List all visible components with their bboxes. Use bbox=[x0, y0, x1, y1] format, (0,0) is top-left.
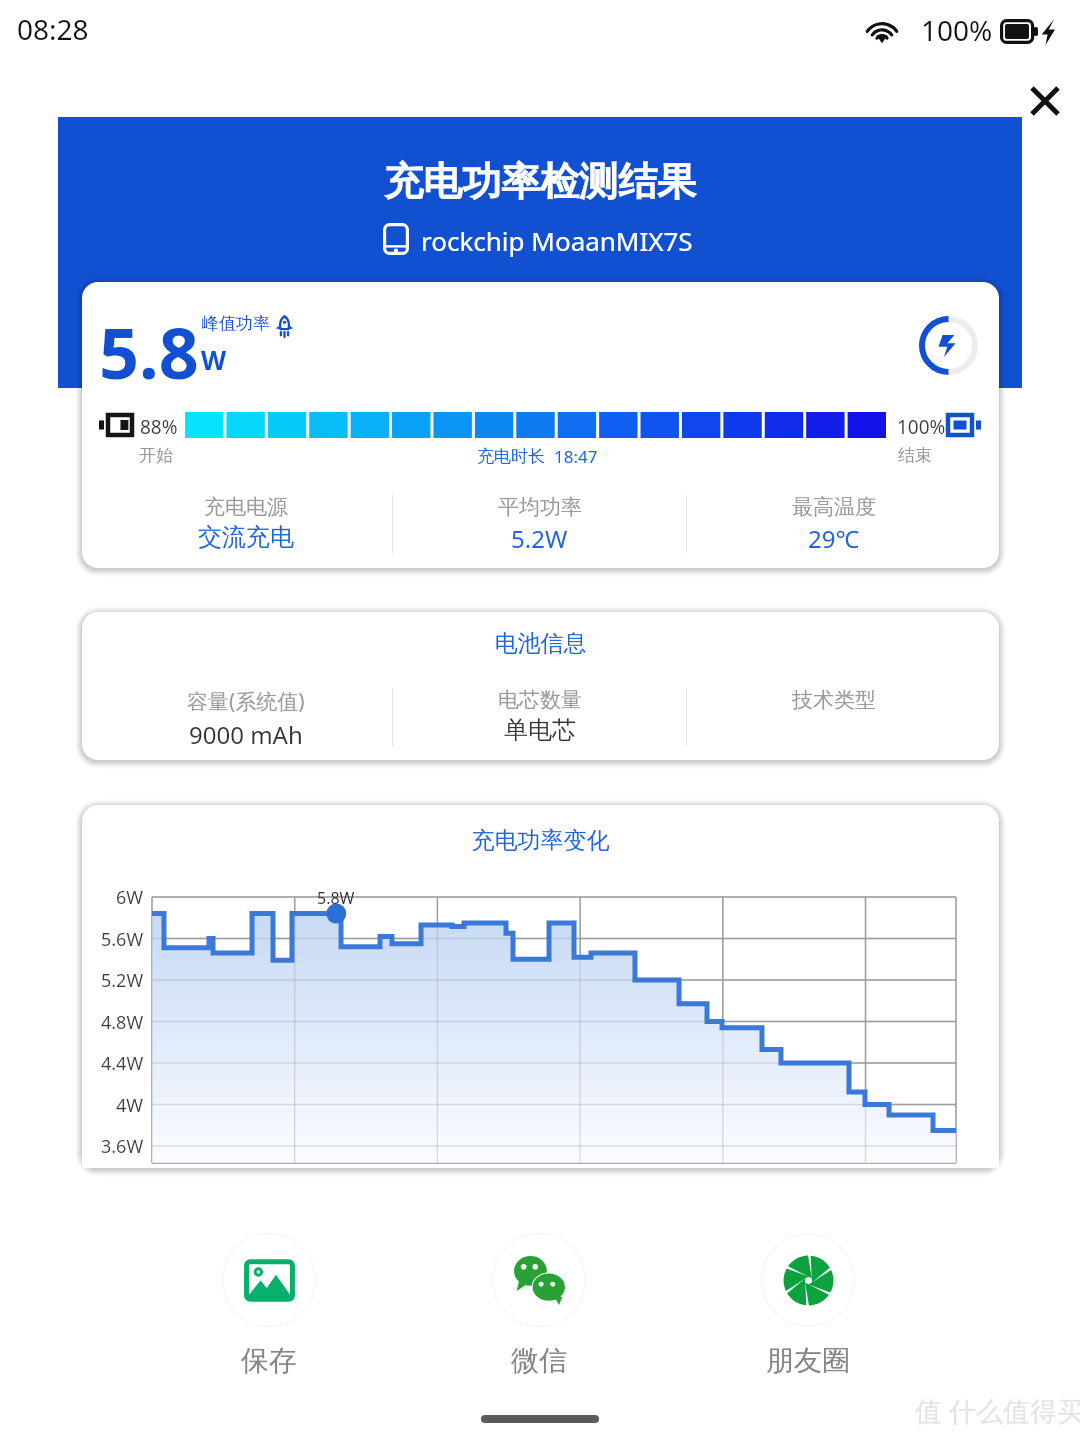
staticText: 值 什么值得买 bbox=[915, 1392, 1080, 1429]
button[interactable]: Close bbox=[1010, 66, 1080, 136]
staticText: 6W bbox=[116, 885, 144, 910]
staticText: 朋友圈 bbox=[766, 1343, 850, 1378]
staticText: W bbox=[201, 342, 227, 377]
staticText: 单电芯 bbox=[504, 715, 576, 745]
staticText: 充电电源 bbox=[204, 494, 288, 520]
staticText: 9000 mAh bbox=[189, 718, 303, 751]
staticText: 峰值功率 bbox=[202, 313, 270, 334]
staticText: 4W bbox=[116, 1093, 144, 1118]
staticText: 容量(系统值) bbox=[187, 687, 305, 716]
staticText: rockchip MoaanMIX7S bbox=[421, 223, 693, 258]
staticText: 交流充电 bbox=[198, 522, 294, 552]
staticText: 29℃ bbox=[808, 522, 860, 555]
staticText: 3.6W bbox=[101, 1134, 144, 1159]
staticText: 保存 bbox=[241, 1343, 297, 1378]
staticText: 电池信息 bbox=[82, 629, 999, 658]
staticText: 充电功率检测结果 bbox=[58, 157, 1022, 206]
staticText: 08:28 bbox=[17, 10, 89, 48]
staticText: 技术类型 bbox=[792, 687, 876, 713]
staticText: 最高温度 bbox=[792, 494, 876, 520]
staticText: 充电时长 bbox=[477, 446, 545, 467]
button[interactable]: 朋友圈 bbox=[761, 1233, 855, 1378]
staticText: 平均功率 bbox=[498, 494, 582, 520]
button[interactable]: 微信 bbox=[492, 1233, 586, 1378]
staticText: 开始 bbox=[139, 445, 173, 466]
staticText: 5.8W bbox=[317, 887, 355, 909]
staticText: 充电功率变化 bbox=[82, 826, 999, 855]
staticText: 结束 bbox=[898, 445, 932, 466]
staticText: 4.8W bbox=[101, 1010, 144, 1035]
staticText: 100% bbox=[921, 11, 993, 49]
staticText: 18:47 bbox=[554, 445, 598, 468]
staticText: 4.4W bbox=[101, 1051, 144, 1076]
staticText: 5.8 bbox=[99, 304, 199, 399]
staticText: 5.2W bbox=[511, 522, 568, 555]
staticText: 88% bbox=[140, 414, 178, 440]
staticText: 微信 bbox=[511, 1343, 567, 1378]
staticText: 电芯数量 bbox=[498, 687, 582, 713]
staticText: 5.2W bbox=[101, 968, 144, 993]
staticText: 100% bbox=[897, 414, 946, 440]
button[interactable]: 保存 bbox=[222, 1233, 316, 1378]
staticText: 5.6W bbox=[101, 927, 144, 952]
